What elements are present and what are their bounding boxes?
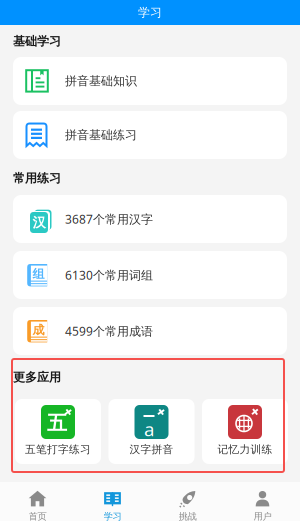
staticText: 汉 (32, 214, 45, 231)
staticText: 用户 (253, 511, 271, 521)
button[interactable]: a (108, 399, 194, 464)
staticText: 五 (47, 411, 67, 435)
staticText: 挑战 (178, 511, 196, 521)
staticText: 拼音基础知识 (65, 74, 137, 88)
button[interactable]: 成 (13, 307, 287, 355)
staticText: 基础学习 (13, 34, 61, 49)
staticText: 更多应用 (13, 370, 61, 385)
button[interactable]: 用户 (225, 482, 300, 521)
staticText: 3687个常用汉字 (65, 211, 153, 227)
staticText: 首页 (28, 511, 46, 521)
staticText: 4599个常用成语 (65, 323, 153, 339)
button[interactable]: 首页 (0, 482, 75, 521)
button[interactable]: 记忆力训练 (202, 399, 288, 464)
staticText: 学习 (138, 5, 162, 20)
button[interactable]: 拼音基础知识 (13, 57, 287, 105)
staticText: 学习 (103, 511, 121, 521)
button[interactable]: 拼音基础练习 (13, 111, 287, 159)
staticText: 拼音基础练习 (65, 128, 137, 142)
button[interactable]: 汉 (13, 195, 287, 243)
staticText: 记忆力训练 (217, 443, 272, 456)
staticText: 五笔打字练习 (25, 443, 91, 456)
button[interactable]: 学习 (75, 482, 150, 521)
button[interactable]: 组 (13, 251, 287, 299)
staticText: 常用练习 (13, 171, 61, 186)
button[interactable]: 五 (15, 399, 101, 464)
button[interactable]: 挑战 (150, 482, 225, 521)
staticText: 组 (33, 267, 45, 281)
staticText: a (144, 417, 154, 441)
staticText: 6130个常用词组 (65, 267, 153, 283)
staticText: 成 (33, 323, 45, 337)
staticText: 汉字拼音 (129, 443, 173, 456)
